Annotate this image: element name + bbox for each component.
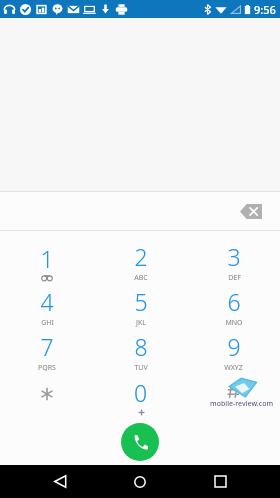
staticText: MNO <box>225 318 243 328</box>
button[interactable]: Pound <box>187 374 280 419</box>
staticText: WXYZ <box>224 363 243 373</box>
button[interactable]: Back <box>40 465 80 498</box>
staticText: JKL <box>136 318 146 328</box>
staticText: PQRS <box>38 363 56 373</box>
staticText: mobile-review.com <box>210 399 274 409</box>
staticText: 9 <box>227 331 241 362</box>
button[interactable]: Recents <box>200 465 240 498</box>
button[interactable]: Backspace <box>236 198 266 224</box>
staticText: GHI <box>41 318 54 328</box>
staticText: 1 <box>40 243 54 274</box>
staticText: 8 <box>134 331 148 362</box>
button[interactable]: 6 <box>187 284 280 329</box>
staticText: 7 <box>40 331 54 362</box>
button[interactable]: 9 <box>187 329 280 374</box>
button[interactable]: 7 <box>0 329 94 374</box>
button[interactable]: 2 <box>94 239 187 284</box>
staticText: 0 <box>134 377 148 408</box>
staticText: 3 <box>227 241 241 272</box>
button[interactable]: 4 <box>0 284 94 329</box>
staticText: DEF <box>228 273 241 283</box>
button[interactable]: Star <box>0 374 94 419</box>
staticText: TUV <box>134 363 148 373</box>
button[interactable]: 0 <box>94 374 187 419</box>
staticText: 5 <box>134 286 148 317</box>
button[interactable]: Call <box>121 423 159 461</box>
staticText: 2 <box>134 241 148 272</box>
button[interactable]: 5 <box>94 284 187 329</box>
staticText: 6 <box>227 286 241 317</box>
staticText: ABC <box>134 273 148 283</box>
button[interactable]: Home <box>120 465 160 498</box>
button[interactable]: 3 <box>187 239 280 284</box>
button[interactable]: 8 <box>94 329 187 374</box>
staticText: 9:56 <box>254 2 276 17</box>
staticText: 4 <box>40 286 54 317</box>
button[interactable]: 1 <box>0 239 94 284</box>
